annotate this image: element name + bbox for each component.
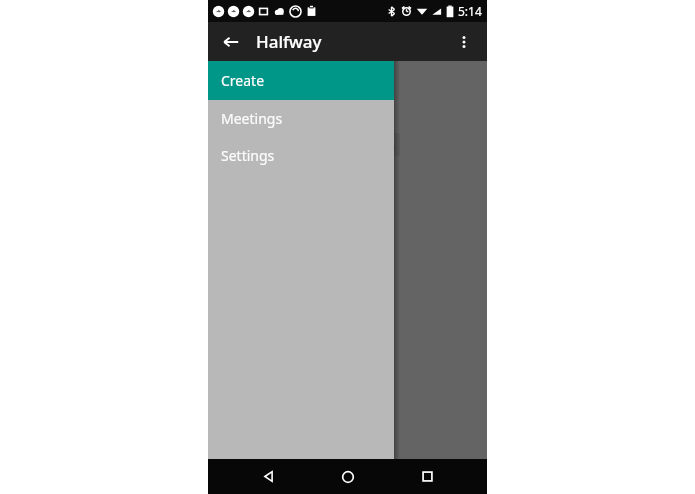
staticText: Create xyxy=(221,71,265,90)
button[interactable]: Settings xyxy=(208,137,394,174)
staticText: 5:14 xyxy=(458,3,482,19)
button[interactable]: Create xyxy=(208,61,394,100)
button[interactable]: Recent apps xyxy=(407,459,447,494)
button[interactable]: Back xyxy=(248,459,288,494)
button[interactable]: CREATE MEETING xyxy=(294,133,400,156)
staticText: Settings xyxy=(221,146,275,165)
staticText: Meetings xyxy=(221,109,283,128)
staticText: Halfway xyxy=(256,30,322,53)
button[interactable]: Meetings xyxy=(208,100,394,137)
button[interactable]: Back xyxy=(216,27,246,57)
button[interactable]: Home xyxy=(328,459,368,494)
staticText: CREATE MEETING xyxy=(298,137,396,152)
button[interactable]: More options xyxy=(449,27,479,57)
